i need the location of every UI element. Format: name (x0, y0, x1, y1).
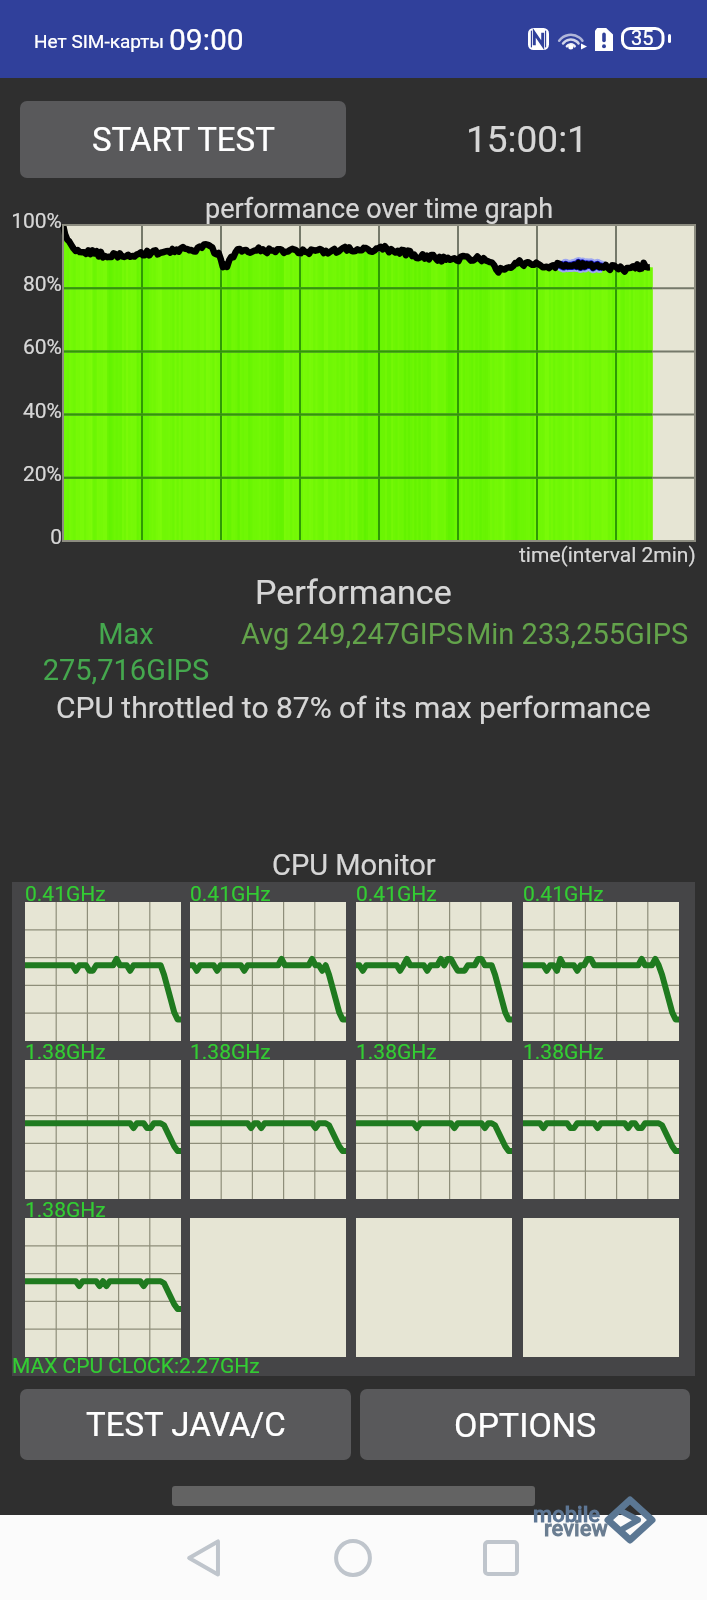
staticText: 1.38GHz (523, 1040, 604, 1065)
staticText: mobile (533, 1502, 601, 1528)
button[interactable]: TEST JAVA/C (20, 1389, 351, 1460)
staticText: CPU Monitor (272, 848, 436, 882)
staticText: CPU throttled to 87% of its max performa… (56, 690, 651, 725)
staticText: MAX CPU CLOCK:2.27GHz (12, 1354, 260, 1379)
staticText: performance over time graph (205, 193, 554, 225)
staticText: Нет SIM-карты (34, 30, 165, 52)
staticText: Performance (255, 572, 452, 612)
staticText: 0 (50, 525, 62, 550)
staticText: 0.41GHz (523, 882, 604, 907)
staticText: 1.38GHz (25, 1198, 106, 1223)
staticText: 09:00 (169, 22, 244, 57)
staticText: Avg 249,247GIPS (241, 617, 464, 651)
button[interactable]: Home (323, 1528, 383, 1588)
staticText: 1.38GHz (356, 1040, 437, 1065)
staticText: OPTIONS (454, 1405, 597, 1445)
staticText: Min 233,255GIPS (466, 617, 689, 651)
staticText: 35 (631, 26, 654, 49)
staticText: 0.41GHz (190, 882, 271, 907)
staticText: 1.38GHz (25, 1040, 106, 1065)
staticText: 0.41GHz (25, 882, 106, 907)
staticText: review (544, 1516, 608, 1542)
staticText: 80% (23, 272, 62, 297)
button[interactable]: Recents (471, 1528, 531, 1588)
staticText: 0.41GHz (356, 882, 437, 907)
staticText: START TEST (92, 120, 275, 159)
staticText: 60% (23, 335, 62, 360)
staticText: TEST JAVA/C (86, 1405, 286, 1444)
staticText: 1.38GHz (190, 1040, 271, 1065)
button[interactable]: OPTIONS (360, 1389, 690, 1460)
staticText: time(interval 2min) (519, 543, 696, 568)
staticText: 100% (11, 209, 62, 234)
staticText: 20% (23, 462, 62, 487)
button[interactable]: START TEST (20, 101, 346, 178)
staticText: 40% (23, 399, 62, 424)
staticText: Max 275,716GIPS (40, 617, 212, 687)
staticText: 15:00:1 (466, 118, 588, 161)
button[interactable]: Back (175, 1528, 235, 1588)
